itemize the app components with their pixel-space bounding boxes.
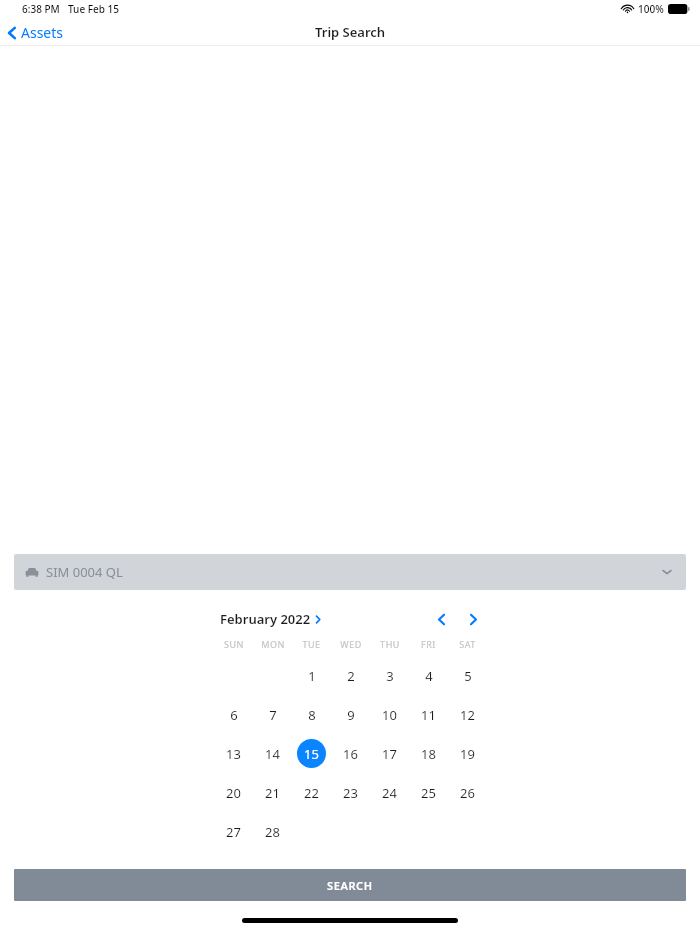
button[interactable]: Assets: [0, 20, 74, 45]
button[interactable]: 17: [375, 739, 404, 768]
staticText: SIM 0004 QL: [46, 563, 123, 581]
button[interactable]: SIM 0004 QL: [14, 554, 686, 590]
staticText: Trip Search: [315, 23, 386, 41]
staticText: 17: [382, 745, 397, 763]
staticText: 6:38 PM: [22, 2, 60, 16]
staticText: WED: [340, 638, 362, 650]
staticText: 14: [265, 745, 280, 763]
staticText: 23: [343, 784, 358, 802]
button[interactable]: 11: [414, 700, 443, 729]
staticText: 2: [347, 667, 355, 685]
staticText: February 2022: [220, 610, 311, 628]
button[interactable]: February 2022: [214, 607, 327, 631]
staticText: SUN: [224, 638, 244, 650]
button[interactable]: 16: [336, 739, 365, 768]
button[interactable]: 28: [258, 817, 287, 846]
button[interactable]: 1: [297, 661, 326, 690]
button[interactable]: Next month: [460, 607, 486, 631]
button[interactable]: 4: [414, 661, 443, 690]
staticText: 19: [460, 745, 475, 763]
staticText: FRI: [421, 638, 436, 650]
button[interactable]: 2: [336, 661, 365, 690]
button[interactable]: Previous month: [428, 607, 454, 631]
button[interactable]: 27: [219, 817, 248, 846]
staticText: 26: [460, 784, 475, 802]
button[interactable]: 3: [375, 661, 404, 690]
button[interactable]: 26: [453, 778, 482, 807]
button[interactable]: 14: [258, 739, 287, 768]
button[interactable]: 21: [258, 778, 287, 807]
staticText: 9: [347, 706, 355, 724]
staticText: 20: [226, 784, 241, 802]
button[interactable]: 22: [297, 778, 326, 807]
button[interactable]: 15: [297, 739, 326, 768]
staticText: 13: [226, 745, 241, 763]
staticText: THU: [380, 638, 400, 650]
staticText: SEARCH: [327, 878, 373, 893]
button[interactable]: 18: [414, 739, 443, 768]
button[interactable]: SEARCH: [14, 869, 686, 901]
button[interactable]: 20: [219, 778, 248, 807]
button[interactable]: 8: [297, 700, 326, 729]
button[interactable]: 9: [336, 700, 365, 729]
staticText: Tue Feb 15: [68, 2, 119, 16]
staticText: TUE: [302, 638, 321, 650]
staticText: SAT: [459, 638, 476, 650]
button[interactable]: 23: [336, 778, 365, 807]
button[interactable]: 13: [219, 739, 248, 768]
button[interactable]: 10: [375, 700, 404, 729]
staticText: 5: [464, 667, 472, 685]
staticText: MON: [261, 638, 285, 650]
button[interactable]: 19: [453, 739, 482, 768]
staticText: 11: [421, 706, 436, 724]
button[interactable]: 6: [219, 700, 248, 729]
button[interactable]: 12: [453, 700, 482, 729]
staticText: 6: [230, 706, 238, 724]
staticText: 27: [226, 823, 241, 841]
staticText: 1: [308, 667, 316, 685]
staticText: 8: [308, 706, 316, 724]
staticText: Assets: [21, 23, 64, 42]
button[interactable]: 24: [375, 778, 404, 807]
staticText: 4: [425, 667, 433, 685]
staticText: 28: [265, 823, 280, 841]
staticText: 21: [265, 784, 280, 802]
staticText: 12: [460, 706, 475, 724]
staticText: 16: [343, 745, 358, 763]
staticText: 3: [386, 667, 394, 685]
staticText: 15: [304, 745, 319, 763]
button[interactable]: 5: [453, 661, 482, 690]
button[interactable]: 25: [414, 778, 443, 807]
staticText: 24: [382, 784, 397, 802]
staticText: 22: [304, 784, 319, 802]
button[interactable]: 7: [258, 700, 287, 729]
staticText: 10: [382, 706, 397, 724]
staticText: 100%: [638, 2, 664, 16]
staticText: 18: [421, 745, 436, 763]
staticText: 7: [269, 706, 277, 724]
staticText: 25: [421, 784, 436, 802]
